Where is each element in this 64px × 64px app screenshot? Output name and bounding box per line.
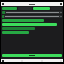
button[interactable]: Status item [2,19,62,22]
button[interactable]: App bar [1,2,63,6]
button[interactable]: Primary action [2,54,62,57]
button[interactable]: Filter one [2,7,17,10]
button[interactable] [2,15,62,18]
button[interactable]: Status item [2,27,62,30]
button[interactable]: Filter three [33,7,50,10]
button[interactable]: Status item [2,23,62,26]
button[interactable] [2,11,62,14]
button[interactable]: Status item [2,31,62,34]
